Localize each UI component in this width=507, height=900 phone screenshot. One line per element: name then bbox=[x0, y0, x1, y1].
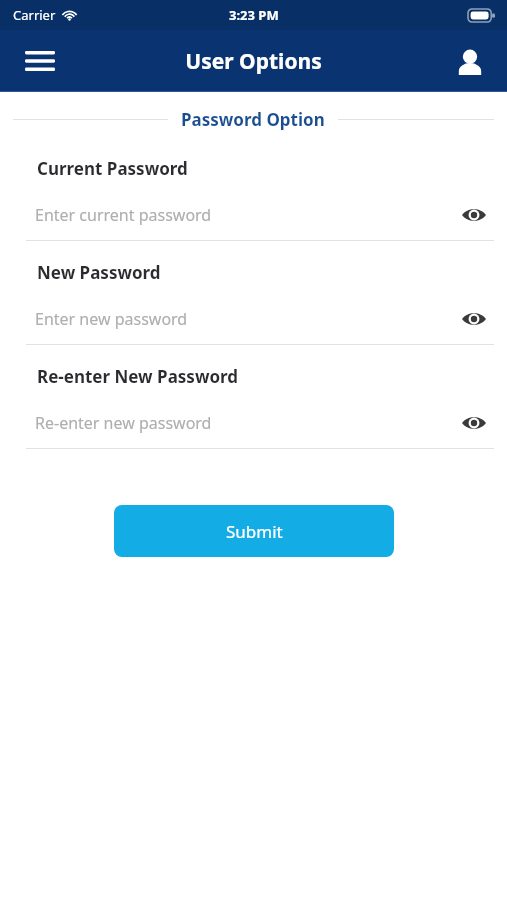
staticText: Carrier bbox=[13, 6, 56, 24]
staticText: Password Option bbox=[181, 108, 325, 131]
button[interactable]: Open navigation menu bbox=[14, 35, 66, 87]
button[interactable]: Enter new password bbox=[26, 302, 494, 336]
button[interactable]: Submit bbox=[114, 505, 394, 557]
staticText: Current Password bbox=[37, 157, 188, 180]
button[interactable]: Profile bbox=[445, 36, 495, 86]
button[interactable]: Show password bbox=[454, 198, 494, 232]
staticText: Submit bbox=[226, 520, 283, 543]
staticText: New Password bbox=[37, 261, 161, 284]
staticText: User Options bbox=[185, 47, 322, 76]
staticText: 3:23 PM bbox=[229, 6, 279, 24]
button[interactable]: Show password bbox=[454, 406, 494, 440]
button[interactable]: Enter current password bbox=[26, 198, 494, 232]
staticText: Enter new password bbox=[35, 308, 188, 330]
staticText: Re-enter New Password bbox=[37, 365, 239, 388]
button[interactable]: Show password bbox=[454, 302, 494, 336]
button[interactable]: Re-enter new password bbox=[26, 406, 494, 440]
staticText: Re-enter new password bbox=[35, 412, 212, 434]
staticText: Enter current password bbox=[35, 204, 212, 226]
